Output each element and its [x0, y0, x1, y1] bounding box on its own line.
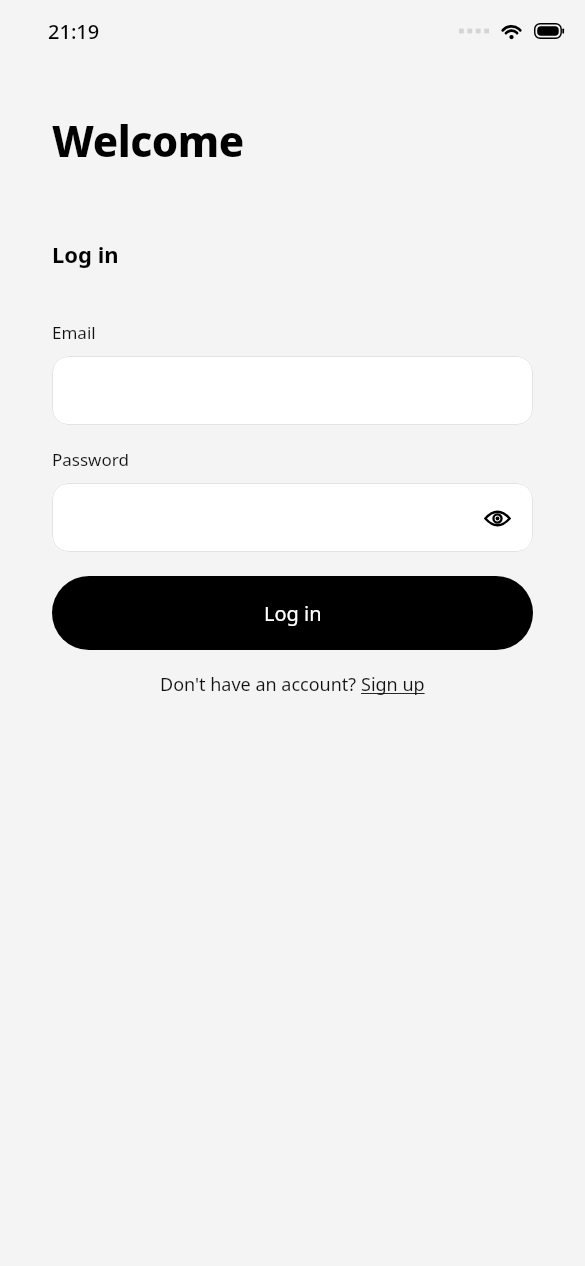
- staticText: Log in: [52, 239, 119, 269]
- button[interactable]: Show password: [52, 483, 533, 552]
- staticText: Don't have an account?: [160, 672, 361, 697]
- button[interactable]: Log in: [52, 576, 533, 650]
- staticText: Password: [52, 448, 129, 471]
- button[interactable]: Sign up: [361, 672, 425, 697]
- staticText: Welcome: [52, 112, 244, 169]
- button[interactable]: Show password: [477, 498, 517, 538]
- button[interactable]: [52, 356, 533, 425]
- staticText: Email: [52, 321, 96, 344]
- staticText: Log in: [264, 600, 322, 627]
- staticText: 21:19: [48, 18, 100, 45]
- staticText: Sign up: [361, 672, 425, 697]
